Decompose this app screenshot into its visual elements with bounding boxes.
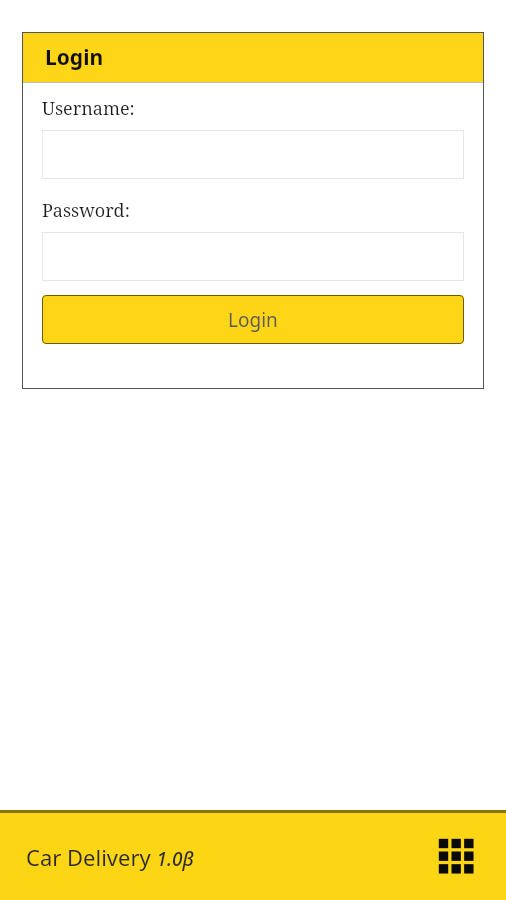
staticText: Login [45, 43, 104, 72]
button[interactable]: Login [42, 295, 464, 344]
staticText: Password: [42, 198, 130, 223]
button[interactable]: Menu [434, 834, 480, 880]
button[interactable] [42, 232, 464, 281]
staticText: Car Delivery 1.0β [26, 842, 194, 872]
staticText: Login [228, 307, 278, 333]
staticText: Username: [42, 96, 135, 121]
button[interactable] [42, 130, 464, 179]
